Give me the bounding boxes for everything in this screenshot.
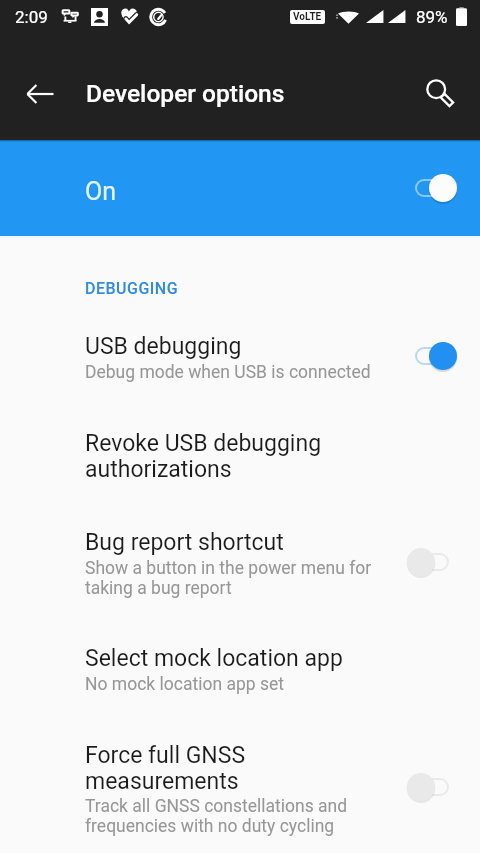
- button[interactable]: Select mock location app: [0, 645, 480, 695]
- staticText: Select mock location app: [85, 645, 343, 672]
- staticText: USB debugging: [85, 333, 242, 360]
- staticText: Force full GNSS measurements: [85, 742, 398, 794]
- staticText: Bug report shortcut: [85, 529, 284, 556]
- button[interactable]: Toggle off: [406, 767, 458, 807]
- staticText: VoLTE: [293, 11, 322, 23]
- staticText: DEBUGGING: [85, 279, 179, 298]
- button[interactable]: Back: [16, 70, 64, 118]
- staticText: Track all GNSS constellations and freque…: [85, 796, 398, 836]
- button[interactable]: On: [0, 140, 480, 236]
- button[interactable]: USB debugging: [0, 333, 480, 383]
- staticText: Debug mode when USB is connected: [85, 362, 371, 383]
- staticText: Show a button in the power menu for taki…: [85, 558, 398, 598]
- staticText: 2:09: [15, 7, 48, 27]
- button[interactable]: Toggle off: [406, 542, 458, 582]
- staticText: No mock location app set: [85, 674, 284, 695]
- button[interactable]: Search: [420, 73, 466, 119]
- button[interactable]: Toggle on: [406, 168, 458, 208]
- button[interactable]: Revoke USB debugging authorizations: [0, 430, 480, 482]
- button[interactable]: Toggle on: [406, 336, 458, 376]
- staticText: 89%: [416, 7, 448, 27]
- staticText: Revoke USB debugging authorizations: [85, 430, 450, 482]
- button[interactable]: Bug report shortcut: [0, 529, 480, 598]
- button[interactable]: Force full GNSS measurements: [0, 742, 480, 836]
- staticText: On: [85, 177, 117, 206]
- staticText: Developer options: [86, 79, 285, 108]
